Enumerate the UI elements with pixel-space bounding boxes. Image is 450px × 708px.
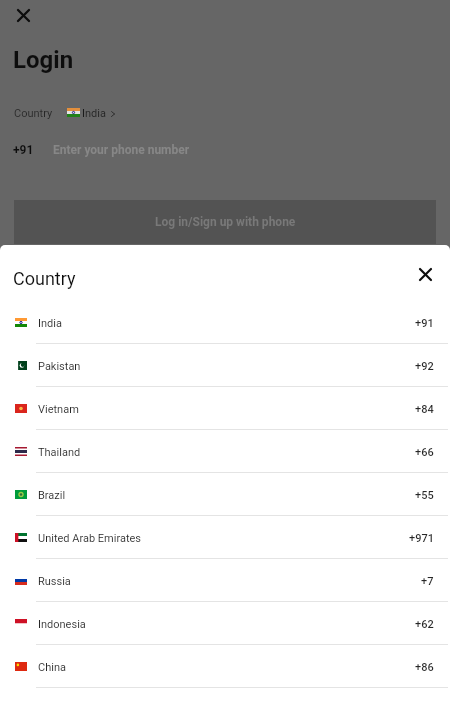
staticText: +971 [409, 532, 434, 545]
staticText: +55 [415, 489, 434, 502]
staticText: +91 [13, 143, 34, 157]
button[interactable]: Thailand [0, 430, 450, 473]
staticText: +92 [415, 360, 434, 373]
staticText: +66 [415, 446, 434, 459]
staticText: Russia [38, 575, 71, 588]
button[interactable]: United Arab Emirates [0, 516, 450, 559]
button[interactable]: Russia [0, 559, 450, 602]
button[interactable]: Close [11, 3, 35, 27]
button[interactable]: India [67, 107, 115, 120]
staticText: India [38, 317, 62, 330]
staticText: Brazil [38, 489, 66, 502]
staticText: Login [13, 46, 74, 74]
button[interactable]: India [0, 301, 450, 344]
staticText: Indonesia [38, 618, 86, 631]
button[interactable]: Close [412, 261, 438, 287]
staticText: +84 [415, 403, 434, 416]
staticText: +62 [415, 618, 434, 631]
staticText: Pakistan [38, 360, 81, 373]
staticText: United Arab Emirates [38, 532, 142, 545]
staticText: +86 [415, 661, 434, 674]
button[interactable]: Pakistan [0, 344, 450, 387]
button[interactable]: Log in/Sign up with phone [14, 200, 436, 244]
button[interactable]: China [0, 645, 450, 688]
staticText: Log in/Sign up with phone [155, 215, 296, 229]
staticText: Country [13, 268, 76, 289]
button[interactable]: Indonesia [0, 602, 450, 645]
staticText: China [38, 661, 66, 674]
staticText: Enter your phone number [53, 143, 190, 157]
button[interactable]: Brazil [0, 473, 450, 516]
staticText: Thailand [38, 446, 81, 459]
staticText: India [82, 107, 106, 120]
staticText: +91 [415, 317, 434, 330]
staticText: +7 [421, 575, 434, 588]
staticText: Country [14, 107, 53, 120]
staticText: Vietnam [38, 403, 79, 416]
button[interactable]: Vietnam [0, 387, 450, 430]
